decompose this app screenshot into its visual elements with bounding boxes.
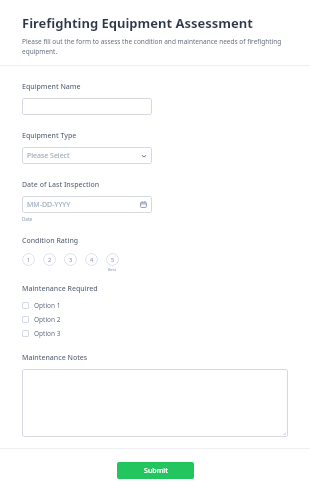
staticText: Best — [108, 267, 117, 272]
staticText: Date — [22, 216, 32, 222]
staticText: Option 1 — [34, 301, 61, 310]
staticText: Please Select — [27, 151, 70, 161]
staticText: Maintenance Notes — [22, 353, 88, 363]
staticText: Option 2 — [34, 315, 61, 324]
button[interactable]: Option 3 — [22, 328, 61, 339]
button[interactable]: 4 — [85, 253, 98, 266]
staticText: 1 — [27, 256, 31, 263]
staticText: Firefighting Equipment Assessment — [22, 14, 253, 32]
button[interactable]: 5 — [106, 253, 119, 266]
button[interactable]: MM-DD-YYYY — [22, 196, 152, 213]
button[interactable] — [22, 98, 152, 115]
staticText: MM-DD-YYYY — [27, 200, 71, 210]
staticText: Equipment Name — [22, 82, 81, 92]
staticText: 5 — [111, 256, 115, 263]
staticText: 2 — [48, 256, 52, 263]
button[interactable]: Option 1 — [22, 300, 61, 311]
button[interactable]: Option 2 — [22, 314, 61, 325]
button[interactable] — [22, 369, 288, 437]
button[interactable]: Submit — [117, 462, 194, 479]
button[interactable]: 1 — [22, 253, 35, 266]
button[interactable]: 3 — [64, 253, 77, 266]
staticText: Option 3 — [34, 329, 61, 338]
staticText: Please fill out the form to assess the c… — [22, 37, 288, 56]
staticText: Maintenance Required — [22, 284, 98, 294]
staticText: Condition Rating — [22, 236, 79, 246]
staticText: Date of Last Inspection — [22, 180, 100, 190]
staticText: 3 — [69, 256, 73, 263]
staticText: 4 — [90, 256, 94, 263]
staticText: Submit — [144, 466, 168, 476]
button[interactable]: 2 — [43, 253, 56, 266]
button[interactable]: Please Select — [22, 147, 152, 164]
staticText: Equipment Type — [22, 131, 77, 141]
